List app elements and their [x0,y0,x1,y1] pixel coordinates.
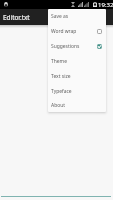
staticText: Editor.txt [3,13,30,22]
button[interactable]: About [48,99,106,112]
button[interactable]: Suggestions [48,39,106,54]
button[interactable]: Save as [48,9,106,24]
button[interactable]: Typeface [48,84,106,99]
button[interactable]: Text size [48,69,106,84]
staticText: Word wrap [51,28,77,35]
staticText: 19:32 [98,1,113,9]
staticText: Theme [51,58,67,65]
staticText: Typeface [51,88,72,95]
staticText: Suggestions [51,43,80,50]
button[interactable] [0,0,113,25]
staticText: About [51,102,66,109]
button[interactable]: Theme [48,54,106,69]
staticText: Text size [51,73,71,80]
button[interactable]: Word wrap [48,24,106,39]
other: Suggestions on [97,44,102,49]
other: Word wrap off [97,29,102,34]
staticText: Save as [51,13,69,20]
